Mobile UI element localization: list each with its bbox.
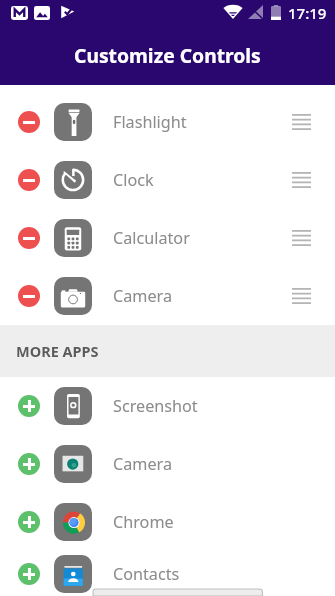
staticText: Clock [113, 169, 154, 191]
button[interactable]: Add [18, 563, 40, 585]
staticText: Camera [113, 285, 173, 307]
other: Reorder [292, 172, 311, 188]
button[interactable]: Add [0, 435, 335, 493]
button[interactable]: Remove [0, 93, 335, 151]
button[interactable]: Remove [18, 111, 40, 133]
button[interactable]: Remove [18, 169, 40, 191]
staticText: Camera [113, 453, 173, 475]
button[interactable]: Add [18, 395, 40, 417]
button[interactable]: Add [0, 377, 335, 435]
staticText: Contacts [113, 563, 180, 585]
button[interactable]: Add [0, 551, 335, 596]
staticText: 17:19 [288, 3, 327, 23]
button[interactable]: Add [0, 493, 335, 551]
staticText: MORE APPS [16, 341, 99, 361]
button[interactable]: Remove [18, 285, 40, 307]
button[interactable]: Remove [0, 267, 335, 325]
staticText: Chrome [113, 511, 174, 533]
other: Reorder [292, 288, 311, 304]
button[interactable]: Add [18, 453, 40, 475]
staticText: Calculator [113, 227, 190, 249]
staticText: Screenshot [113, 395, 198, 417]
staticText: Customize Controls [74, 42, 261, 68]
button[interactable]: Add [18, 511, 40, 533]
button[interactable]: Remove [0, 209, 335, 267]
button[interactable]: Remove [0, 151, 335, 209]
staticText: Flashlight [113, 111, 187, 133]
other: Reorder [292, 230, 311, 246]
button[interactable]: Remove [18, 227, 40, 249]
other: Reorder [292, 114, 311, 130]
